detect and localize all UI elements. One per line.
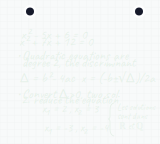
staticText: degree 2, the discriminant xyxy=(22,54,135,71)
staticText: ℝ et ℚ xyxy=(119,119,143,132)
staticText: x² + 7x + 12 = 0 xyxy=(19,33,93,50)
staticText: Δ = b²- 4ac x = (-b±√Δ)/2a xyxy=(20,68,155,86)
staticText: sont dans xyxy=(117,110,147,122)
staticText: • Quadratic equations are xyxy=(17,47,128,64)
staticText: Les solutions xyxy=(117,101,155,113)
staticText: x₁ = 2 , x₂ = 3 xyxy=(42,101,98,116)
staticText: 2. reduce the equation xyxy=(21,91,118,108)
staticText: x² - 5x + 6 = 0 xyxy=(21,26,87,43)
staticText: x₁ = -3 , x₂ = -4 xyxy=(44,120,108,135)
staticText: • Convert Δ>0, two sol. xyxy=(17,84,120,102)
